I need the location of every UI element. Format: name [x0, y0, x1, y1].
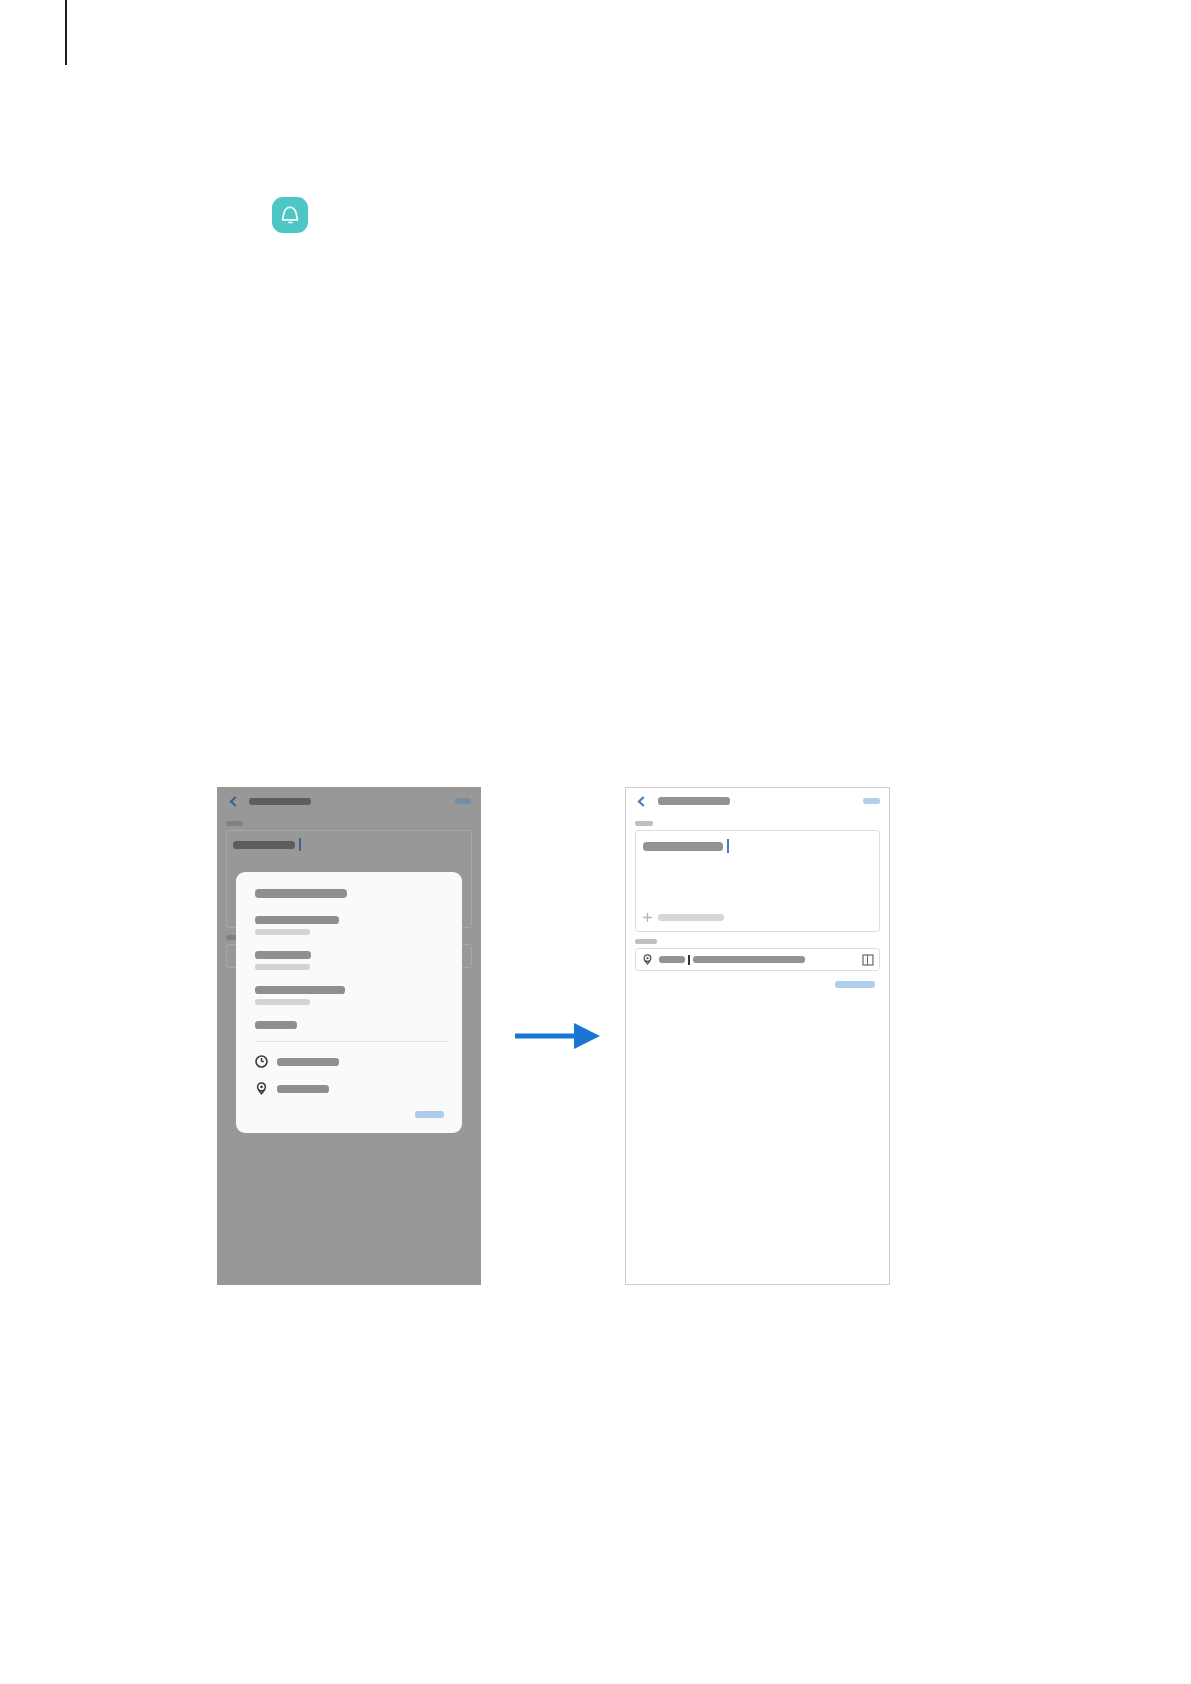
- button[interactable]: [255, 986, 448, 1005]
- button[interactable]: [255, 951, 448, 970]
- button[interactable]: [255, 1082, 448, 1095]
- button[interactable]: [635, 830, 880, 932]
- button[interactable]: Back: [225, 793, 241, 809]
- button[interactable]: [635, 948, 880, 971]
- button[interactable]: [453, 796, 473, 806]
- button[interactable]: Reminder app icon: [272, 197, 308, 233]
- button[interactable]: [255, 1021, 448, 1029]
- button[interactable]: Back: [633, 793, 649, 809]
- button[interactable]: [643, 913, 724, 922]
- button[interactable]: [861, 796, 882, 806]
- button[interactable]: [226, 830, 472, 928]
- button[interactable]: [832, 978, 878, 991]
- button[interactable]: [255, 916, 448, 935]
- button[interactable]: [411, 1108, 448, 1121]
- button[interactable]: [226, 944, 472, 968]
- button[interactable]: [255, 1055, 448, 1068]
